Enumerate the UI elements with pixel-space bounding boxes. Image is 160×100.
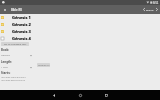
staticText: GO TO THE BIBLE TEXT — [4, 43, 27, 46]
staticText: 8:52 — [153, 1, 159, 5]
button[interactable]: Previous day — [141, 5, 146, 14]
button[interactable]: GO TO THE BIBLE TEXT — [1, 42, 29, 46]
button[interactable]: Génesis 2 — [0, 21, 160, 28]
staticText: Génesis 2 — [12, 22, 31, 27]
staticText: Génesis — [1, 53, 10, 56]
staticText: Génesis 1 — [12, 15, 31, 20]
staticText: Your plan starts 8/4/2015 — [1, 76, 26, 79]
staticText: Bible RV — [11, 8, 22, 12]
button[interactable]: 8/4/15 — [146, 8, 154, 11]
button[interactable]: Génesis 4 — [0, 35, 160, 42]
button[interactable]: LOAD PLAN — [37, 63, 50, 67]
staticText: Starts: — [1, 71, 11, 75]
staticText: Génesis 3 — [12, 29, 31, 34]
staticText: Book: — [1, 48, 10, 52]
button[interactable]: Génesis — [1, 53, 32, 57]
staticText: Your plan ends 8/3/2016 — [1, 79, 25, 82]
staticText: Génesis 3 — [12, 29, 31, 34]
staticText: Génesis 1 — [12, 15, 31, 20]
button[interactable]: Génesis 1 — [0, 14, 160, 21]
staticText: LOAD PLAN — [38, 64, 50, 67]
staticText: Génesis 2 — [12, 22, 31, 27]
staticText: Length: — [1, 60, 12, 64]
button[interactable]: Next day — [154, 5, 159, 14]
staticText: 1 year — [1, 65, 8, 68]
staticText: Génesis 4 — [12, 36, 31, 41]
button[interactable]: Back — [47, 90, 61, 100]
staticText: Génesis 4 — [12, 36, 31, 41]
button[interactable]: Recent apps — [99, 90, 113, 100]
button[interactable]: Home — [73, 90, 87, 100]
button[interactable]: Génesis 3 — [0, 28, 160, 35]
button[interactable]: Open navigation drawer — [0, 5, 9, 14]
button[interactable]: 1 year — [1, 65, 32, 69]
